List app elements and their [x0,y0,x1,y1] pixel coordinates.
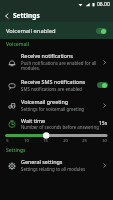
staticText: 25 [82,138,87,143]
staticText: 10 [24,138,29,143]
staticText: Wait time [21,117,46,124]
button[interactable]: Wait time [0,115,113,145]
button[interactable]: Voicemail enabled [0,22,113,39]
staticText: Voicemail [6,41,30,48]
staticText: SMS notifications are enabled [21,86,83,92]
staticText: 30 [102,138,107,143]
button[interactable]: Receive SMS notifications [0,75,113,95]
button[interactable]: Open [100,58,108,66]
button[interactable]: Toggle [96,28,107,34]
staticText: Receive SMS notifications [21,78,86,85]
button[interactable]: Receive notifications [0,49,113,75]
staticText: General settings [21,158,63,165]
staticText: Settings [13,11,40,20]
staticText: 20 [63,138,68,143]
button[interactable]: Open [100,101,108,109]
staticText: Settings relating to all modules [21,166,86,172]
button[interactable]: Voicemail greeting [0,95,113,115]
button[interactable]: Back [0,9,13,22]
staticText: Receive notifications [21,52,73,59]
staticText: Settings for voicemail greeting [21,106,85,112]
staticText: Push notifications are enabled for all m… [21,60,97,72]
button[interactable]: Open [100,161,108,169]
staticText: Settings [6,147,26,154]
button[interactable]: General settings [0,155,113,175]
staticText: 5 [6,138,9,143]
staticText: 15 [43,138,48,143]
staticText: Voicemail greeting [21,98,69,105]
staticText: 15s [99,120,108,127]
staticText: Voicemail enabled [6,27,96,35]
staticText: Number of seconds before answering [21,124,99,130]
button[interactable]: Toggle [97,82,108,88]
staticText: 06.00 [97,1,110,8]
